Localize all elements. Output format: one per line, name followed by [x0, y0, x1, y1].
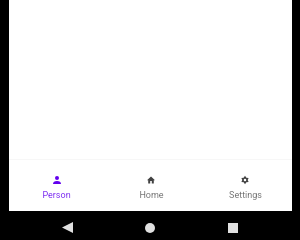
staticText: Home [139, 190, 164, 201]
button[interactable]: Recent apps [191, 211, 274, 240]
staticText: Person [42, 190, 71, 201]
button[interactable]: Back [26, 211, 108, 240]
button[interactable]: Home [108, 211, 191, 240]
button[interactable]: Home [104, 159, 198, 211]
staticText: Settings [229, 190, 262, 201]
button[interactable]: Person [9, 159, 104, 211]
button[interactable]: Settings [198, 159, 292, 211]
